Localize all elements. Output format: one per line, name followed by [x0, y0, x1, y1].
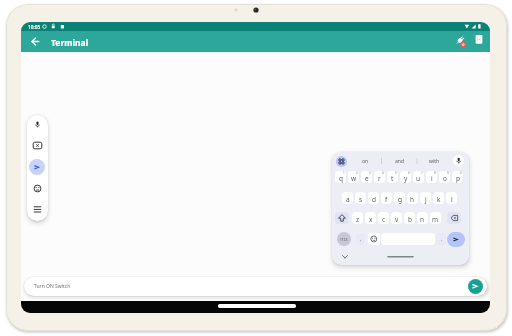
staticText: with [429, 158, 440, 165]
button[interactable]: Turn ON Switch [24, 277, 487, 296]
staticText: y [404, 174, 408, 183]
button[interactable] [29, 159, 45, 175]
button[interactable]: v [391, 212, 402, 224]
button[interactable]: m [430, 212, 441, 224]
staticText: 5 [395, 171, 397, 175]
button[interactable] [447, 232, 465, 247]
staticText: c [382, 215, 386, 224]
staticText: x [369, 215, 373, 224]
button[interactable]: o [439, 171, 450, 183]
staticText: 2 [356, 171, 358, 175]
button[interactable]: on [355, 155, 375, 167]
staticText: 3 [369, 171, 371, 175]
button[interactable]: n [417, 212, 428, 224]
button[interactable]: u [413, 171, 424, 183]
staticText: and [395, 158, 404, 165]
button[interactable] [27, 33, 44, 50]
button[interactable] [468, 279, 483, 294]
button[interactable]: ?123 [337, 232, 351, 246]
staticText: l [451, 195, 453, 204]
staticText: 9 [447, 171, 449, 175]
button[interactable]: j [420, 192, 431, 204]
staticText: 10:05 [28, 24, 41, 31]
button[interactable]: x [365, 212, 376, 224]
button[interactable] [447, 212, 461, 224]
button[interactable] [336, 156, 347, 167]
button[interactable]: f [381, 192, 392, 204]
staticText: v [395, 215, 399, 224]
button[interactable] [452, 33, 469, 50]
button[interactable]: s [355, 192, 366, 204]
button[interactable]: h [407, 192, 418, 204]
button[interactable] [335, 212, 349, 224]
button[interactable]: g [394, 192, 405, 204]
button[interactable] [29, 139, 46, 152]
button[interactable] [29, 203, 46, 216]
staticText: 4 [382, 171, 384, 175]
button[interactable]: w [348, 171, 359, 183]
staticText: b [408, 215, 412, 224]
button[interactable] [368, 233, 380, 245]
button[interactable]: z [352, 212, 363, 224]
button[interactable]: y [400, 171, 411, 183]
button[interactable]: c [378, 212, 389, 224]
staticText: j [425, 195, 427, 204]
button[interactable]: l [446, 192, 457, 204]
staticText: o [443, 174, 447, 183]
button[interactable]: k [433, 192, 444, 204]
staticText: r [378, 174, 381, 183]
staticText: z [356, 215, 360, 224]
button[interactable]: and [389, 155, 409, 167]
staticText: n [420, 215, 425, 224]
staticText: g [398, 195, 402, 204]
staticText: w [351, 174, 357, 183]
staticText: a [346, 195, 350, 204]
button[interactable]: b [404, 212, 415, 224]
staticText: i [431, 174, 433, 183]
staticText: ?123 [340, 237, 348, 242]
staticText: u [416, 174, 421, 183]
button[interactable] [453, 155, 464, 166]
staticText: Turn ON Switch [34, 283, 71, 290]
staticText: on [362, 158, 369, 165]
button[interactable]: . [437, 233, 446, 245]
button[interactable]: with [424, 155, 444, 167]
staticText: Terminal [51, 37, 89, 49]
staticText: 7 [421, 171, 423, 175]
button[interactable] [29, 182, 46, 195]
staticText: 0 [460, 171, 462, 175]
staticText: s [359, 195, 363, 204]
staticText: 1 [343, 171, 345, 175]
button[interactable]: p [452, 171, 463, 183]
staticText: k [437, 195, 441, 204]
staticText: f [385, 195, 388, 204]
staticText: d [372, 195, 376, 204]
staticText: p [456, 174, 460, 183]
button[interactable]: r [374, 171, 385, 183]
button[interactable]: , [356, 233, 365, 245]
staticText: . [441, 236, 443, 243]
button[interactable]: d [368, 192, 379, 204]
staticText: 8 [434, 171, 436, 175]
button[interactable]: e [361, 171, 372, 183]
button[interactable]: q [335, 171, 346, 183]
staticText: q [339, 174, 343, 183]
staticText: t [391, 174, 394, 183]
button[interactable]: a [342, 192, 353, 204]
button[interactable]: i [426, 171, 437, 183]
button[interactable] [471, 33, 487, 49]
button[interactable]: t [387, 171, 398, 183]
staticText: , [360, 236, 362, 243]
staticText: m [432, 215, 439, 224]
button[interactable] [29, 118, 46, 131]
staticText: 6 [408, 171, 410, 175]
staticText: h [410, 195, 415, 204]
staticText: e [365, 174, 369, 183]
